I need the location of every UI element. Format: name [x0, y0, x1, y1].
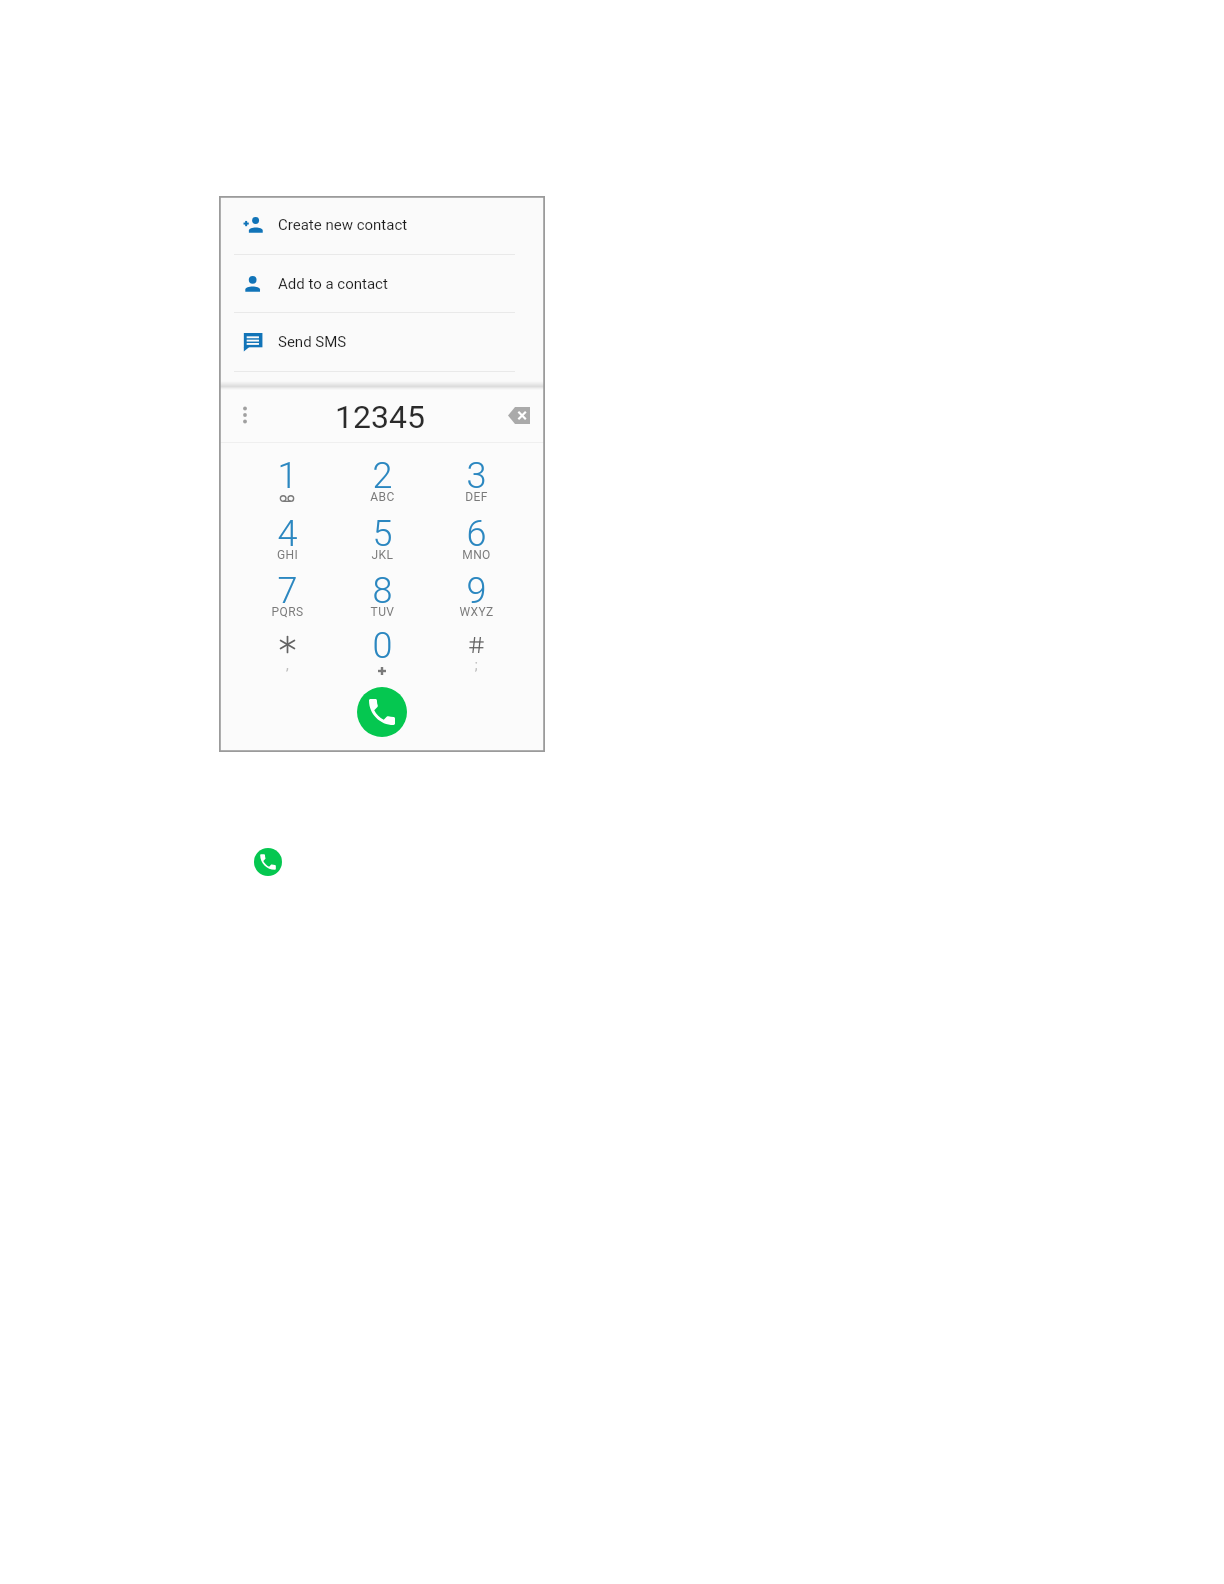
button[interactable]: 7 [240, 577, 335, 634]
staticText: JKL [335, 548, 430, 562]
staticText: 8 [335, 570, 430, 612]
button[interactable]: 9 [429, 577, 524, 634]
button[interactable]: 4 [240, 520, 335, 577]
button[interactable]: Send SMS [219, 313, 545, 371]
staticText: WXYZ [429, 605, 524, 619]
button[interactable]: 8 [335, 577, 430, 634]
button[interactable]: More options [234, 404, 256, 426]
staticText: ; [429, 657, 524, 673]
button[interactable]: Add to a contact [219, 255, 545, 313]
staticText: TUV [335, 605, 430, 619]
button[interactable]: 6 [429, 520, 524, 577]
staticText: Add to a contact [278, 275, 388, 293]
button[interactable]: 2 [335, 462, 430, 519]
staticText: PQRS [240, 605, 335, 619]
button[interactable]: Call [254, 848, 282, 876]
staticText: 6 [429, 513, 524, 555]
button[interactable]: Call [357, 687, 407, 737]
staticText: ABC [335, 490, 430, 504]
staticText: GHI [240, 548, 335, 562]
staticText: 12345 [335, 398, 425, 436]
staticText: 3 [429, 455, 524, 497]
staticText: 2 [335, 455, 430, 497]
staticText: DEF [429, 490, 524, 504]
staticText: Create new contact [278, 216, 408, 234]
button[interactable]: 1 [240, 462, 335, 519]
staticText: 0 [335, 625, 430, 667]
staticText: MNO [429, 548, 524, 562]
staticText: 7 [240, 570, 335, 612]
staticText: 1 [240, 455, 335, 497]
staticText: 5 [335, 513, 430, 555]
staticText: 9 [429, 570, 524, 612]
button[interactable]: 5 [335, 520, 430, 577]
button[interactable]: Backspace [508, 407, 530, 424]
staticText: Send SMS [278, 333, 347, 351]
staticText: 4 [240, 513, 335, 555]
button[interactable]: , [240, 632, 335, 689]
button[interactable]: 0 [335, 632, 430, 689]
button[interactable]: ; [429, 632, 524, 689]
button[interactable]: Create new contact [219, 196, 545, 254]
button[interactable]: 3 [429, 462, 524, 519]
